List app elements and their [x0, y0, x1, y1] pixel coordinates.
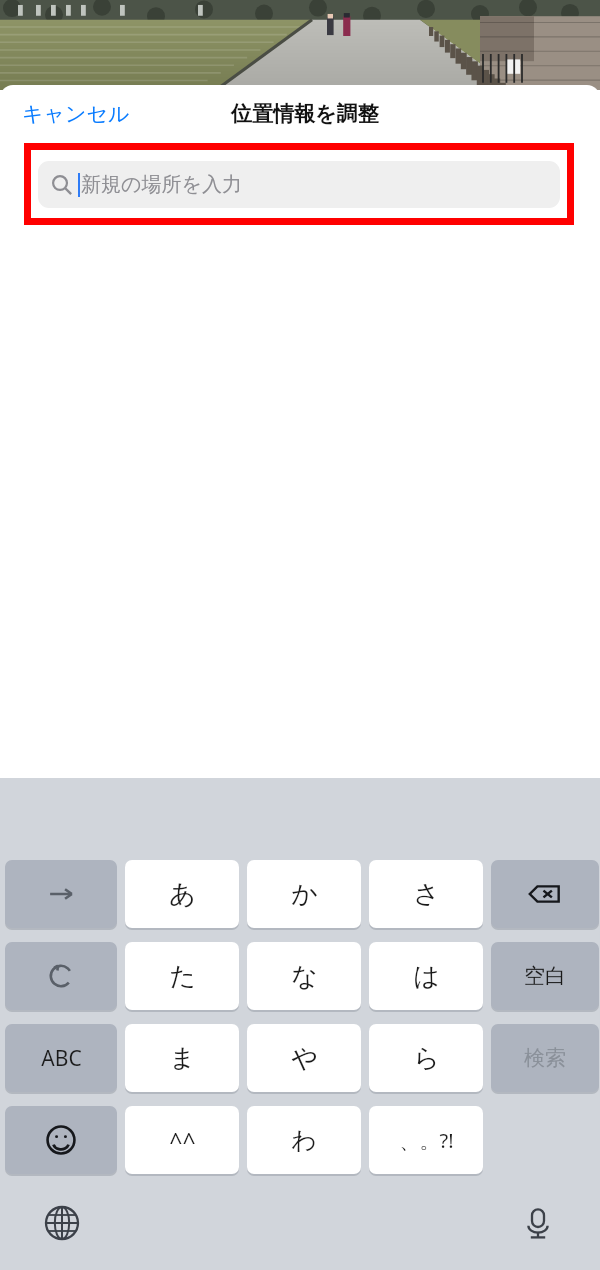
staticText: さ [413, 878, 440, 911]
staticText: 空白 [524, 963, 566, 989]
button[interactable]: ら [369, 1024, 483, 1092]
button[interactable]: や [247, 1024, 361, 1092]
staticText: 、。?! [399, 1127, 454, 1154]
staticText: あ [169, 878, 196, 911]
button[interactable]: ABC [5, 1024, 117, 1092]
staticText: ま [169, 1042, 196, 1075]
button[interactable]: さ [369, 860, 483, 928]
staticText: や [291, 1042, 318, 1075]
button[interactable]: 新規の場所を入力 [38, 161, 560, 208]
button[interactable]: か [247, 860, 361, 928]
button[interactable]: Delete [491, 860, 599, 928]
staticText: か [291, 878, 318, 911]
button[interactable]: 検索 [491, 1024, 599, 1092]
button[interactable]: た [125, 942, 239, 1010]
button[interactable]: は [369, 942, 483, 1010]
button[interactable]: ^^ [125, 1106, 239, 1174]
staticText: は [413, 960, 440, 993]
staticText: キャンセル [22, 101, 130, 127]
staticText: ABC [41, 1044, 82, 1073]
button[interactable]: Undo [5, 942, 117, 1010]
button[interactable]: キャンセル [16, 95, 136, 133]
staticText: わ [291, 1125, 317, 1156]
staticText: な [291, 960, 318, 993]
staticText: ら [413, 1042, 440, 1075]
staticText: 新規の場所を入力 [81, 172, 242, 197]
button[interactable]: ま [125, 1024, 239, 1092]
button[interactable]: Emoji [5, 1106, 117, 1174]
staticText: 位置情報を調整 [231, 101, 379, 127]
staticText: ^^ [169, 1125, 196, 1156]
staticText: 検索 [524, 1045, 566, 1071]
button[interactable]: Dictation [510, 1195, 566, 1251]
button[interactable]: 、。?! [369, 1106, 483, 1174]
button[interactable]: 空白 [491, 942, 599, 1010]
staticText: た [169, 960, 196, 993]
button[interactable]: な [247, 942, 361, 1010]
button[interactable]: あ [125, 860, 239, 928]
button[interactable]: わ [247, 1106, 361, 1174]
button[interactable]: Next candidate [5, 860, 117, 928]
button[interactable]: Change keyboard language [34, 1195, 90, 1251]
